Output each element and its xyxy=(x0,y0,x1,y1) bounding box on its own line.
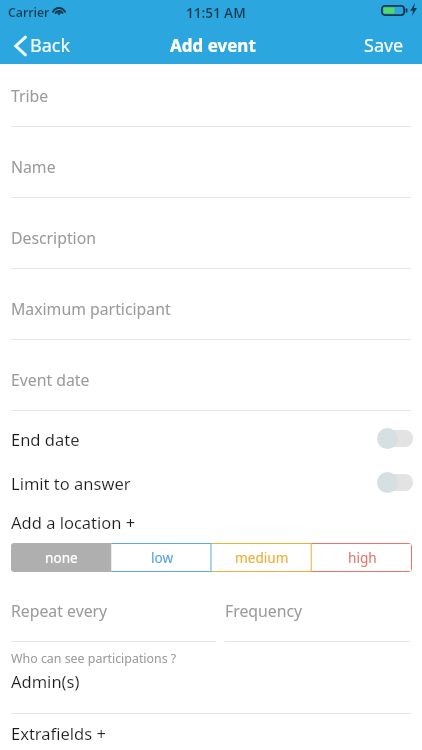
button[interactable]: Tribe xyxy=(0,64,422,135)
staticText: Tribe xyxy=(11,85,49,107)
button[interactable]: Frequency xyxy=(225,586,410,642)
button[interactable]: medium xyxy=(212,543,312,572)
staticText: Add a location + xyxy=(11,511,136,533)
button[interactable]: Maximum participant xyxy=(0,277,422,348)
staticText: Back xyxy=(30,33,71,58)
staticText: Limit to answer xyxy=(11,472,131,494)
button[interactable]: Add a location + xyxy=(0,503,422,541)
staticText: none xyxy=(45,548,78,567)
button[interactable]: Extrafields + xyxy=(0,714,422,750)
button[interactable]: high xyxy=(312,543,412,572)
button[interactable]: Name xyxy=(0,135,422,206)
button[interactable]: Who can see participations ? xyxy=(11,650,411,692)
button[interactable]: Event date xyxy=(0,348,422,419)
staticText: Extrafields + xyxy=(11,722,106,744)
staticText: Add event xyxy=(170,34,256,57)
staticText: Carrier xyxy=(8,4,50,21)
button[interactable]: Repeat every xyxy=(11,586,216,642)
staticText: Maximum participant xyxy=(11,298,171,320)
button[interactable]: none xyxy=(11,543,112,572)
button[interactable]: Limit to answer xyxy=(377,472,413,493)
button[interactable]: End date xyxy=(0,419,422,461)
staticText: End date xyxy=(11,428,80,450)
button[interactable]: Limit to answer xyxy=(0,463,422,505)
staticText: low xyxy=(151,548,174,567)
staticText: Admin(s) xyxy=(11,670,80,692)
staticText: Frequency xyxy=(225,600,303,622)
staticText: Who can see participations ? xyxy=(11,650,177,667)
button[interactable]: End date xyxy=(377,428,413,449)
staticText: Name xyxy=(11,156,56,178)
staticText: medium xyxy=(235,548,289,567)
staticText: Repeat every xyxy=(11,600,108,622)
button[interactable]: Description xyxy=(0,206,422,277)
staticText: high xyxy=(348,548,377,567)
staticText: Event date xyxy=(11,369,90,391)
button[interactable]: Back xyxy=(0,27,82,64)
button[interactable]: low xyxy=(112,543,212,572)
staticText: 11:51 AM xyxy=(186,4,246,22)
staticText: Description xyxy=(11,227,97,249)
button[interactable]: Save xyxy=(351,27,422,64)
